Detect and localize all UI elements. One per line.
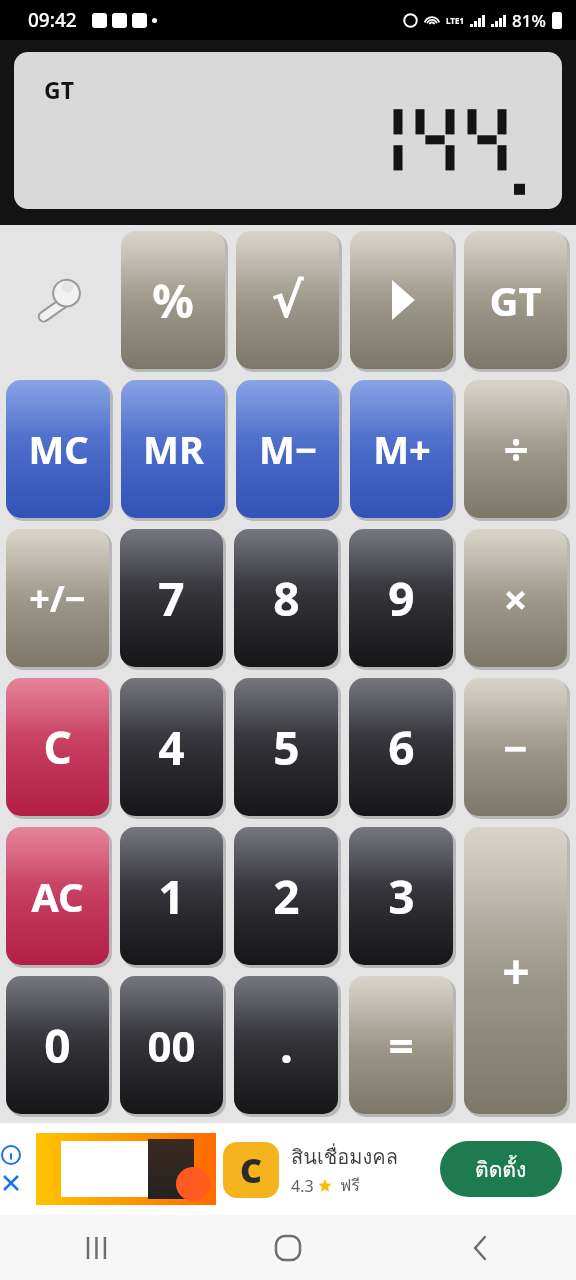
button[interactable]: Settings (2, 227, 117, 376)
button[interactable]: Backspace (350, 231, 453, 369)
button[interactable]: 8 (234, 529, 338, 667)
staticText: C (43, 717, 72, 777)
button[interactable]: Double zero (120, 976, 223, 1114)
staticText: √ (271, 272, 304, 328)
staticText: = (388, 1015, 414, 1075)
staticText: 09:42 (28, 7, 77, 33)
staticText: 3 (388, 865, 415, 928)
staticText: × (503, 570, 528, 627)
staticText: LTE1 (446, 15, 464, 26)
button[interactable]: Square root (236, 231, 339, 369)
button[interactable]: Decimal point (234, 976, 338, 1114)
button[interactable]: GT (464, 231, 567, 369)
staticText: 7 (158, 567, 185, 630)
staticText: GT (44, 74, 74, 105)
staticText: MC (28, 423, 89, 475)
button[interactable]: All clear (6, 827, 109, 965)
staticText: − (503, 719, 528, 776)
button[interactable]: Recents (66, 1218, 126, 1278)
staticText: ÷ (503, 419, 529, 479)
button[interactable]: Minus (464, 678, 567, 816)
staticText: MR (143, 423, 204, 475)
button[interactable]: Divide (464, 380, 567, 518)
staticText: + (502, 938, 530, 1003)
button[interactable]: Back (450, 1218, 510, 1278)
button[interactable]: ติดตั้ง (440, 1141, 562, 1197)
button[interactable]: 4 (120, 678, 223, 816)
button[interactable]: Plus (464, 827, 567, 1114)
other: Settings (20, 262, 100, 342)
staticText: 8 (273, 567, 300, 630)
staticText: M+ (373, 423, 431, 475)
button[interactable]: 1 (120, 827, 223, 965)
staticText: 0 (44, 1014, 71, 1077)
staticText: 1 (158, 865, 185, 928)
staticText: AC (31, 869, 84, 923)
staticText: 00 (147, 1017, 196, 1074)
button[interactable]: Home (258, 1218, 318, 1278)
button[interactable]: 9 (349, 529, 453, 667)
staticText: . (280, 1014, 293, 1077)
button[interactable]: Equals (349, 976, 453, 1114)
staticText: GT (489, 273, 542, 327)
staticText: 4.3 (291, 1175, 314, 1197)
button[interactable]: Sign (6, 529, 109, 667)
staticText: ติดตั้ง (475, 1153, 527, 1186)
staticText: C (240, 1147, 263, 1193)
button[interactable]: 0 (6, 976, 109, 1114)
staticText: 5 (273, 716, 300, 779)
button[interactable]: MC (6, 380, 110, 518)
button[interactable]: 6 (349, 678, 453, 816)
staticText: 6 (388, 716, 415, 779)
button[interactable]: Percent (121, 231, 225, 369)
staticText: M− (259, 423, 317, 475)
staticText: 81% (512, 9, 546, 32)
button[interactable]: 7 (120, 529, 223, 667)
button[interactable]: 2 (234, 827, 338, 965)
staticText: 9 (388, 567, 415, 630)
button[interactable]: M plus (350, 380, 453, 518)
button[interactable]: MR (121, 380, 225, 518)
staticText: 2 (273, 865, 300, 928)
staticText: สินเชื่อมงคล (291, 1141, 398, 1173)
staticText: +/− (29, 574, 86, 623)
staticText: 4 (158, 716, 185, 779)
staticText: ฟรี (340, 1173, 360, 1198)
staticText: % (152, 269, 194, 332)
button[interactable]: Multiply (464, 529, 567, 667)
button[interactable]: 5 (234, 678, 338, 816)
button[interactable]: M minus (236, 380, 339, 518)
button[interactable]: Clear (6, 678, 109, 816)
button[interactable]: 3 (349, 827, 453, 965)
